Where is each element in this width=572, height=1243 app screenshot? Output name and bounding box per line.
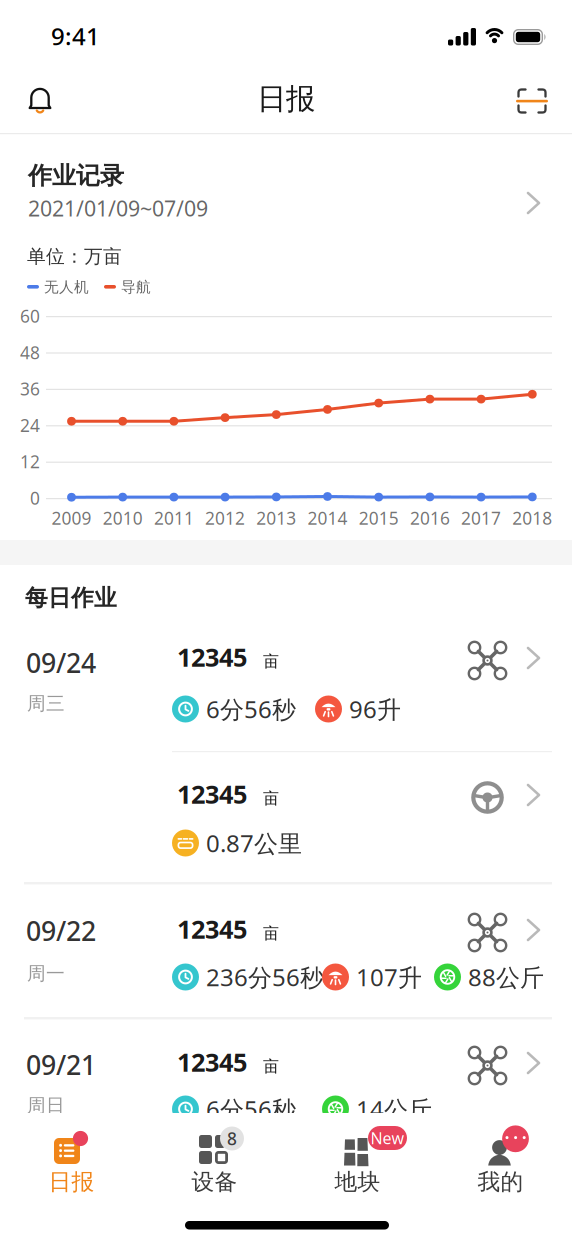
button[interactable]: 12345 bbox=[0, 1020, 572, 1140]
staticText: 12345 bbox=[177, 1045, 247, 1079]
staticText: 0 bbox=[30, 486, 40, 509]
staticText: 0.87公里 bbox=[206, 827, 302, 859]
staticText: 亩 bbox=[263, 1056, 279, 1076]
staticText: 09/24 bbox=[26, 645, 96, 680]
staticText: 09/22 bbox=[26, 913, 96, 948]
staticText: 周三 bbox=[27, 692, 65, 715]
staticText: 107升 bbox=[356, 961, 422, 993]
staticText: 亩 bbox=[263, 923, 279, 943]
staticText: 12345 bbox=[177, 777, 247, 811]
staticText: New bbox=[370, 1127, 404, 1149]
staticText: 我的 bbox=[477, 1168, 523, 1196]
staticText: 作业记录 bbox=[28, 161, 124, 190]
staticText: 236分56秒 bbox=[206, 961, 324, 993]
staticText: 09/21 bbox=[26, 1047, 96, 1082]
staticText: 60 bbox=[20, 304, 40, 327]
staticText: 2016 bbox=[410, 506, 450, 529]
staticText: 设备 bbox=[191, 1168, 237, 1196]
staticText: 日报 bbox=[48, 1168, 94, 1196]
staticText: 2018 bbox=[512, 506, 552, 529]
staticText: 14公斤 bbox=[356, 1093, 432, 1125]
staticText: 2010 bbox=[103, 506, 143, 529]
staticText: 88公斤 bbox=[468, 961, 544, 993]
staticText: 2011 bbox=[154, 506, 194, 529]
staticText: 8 bbox=[227, 1127, 237, 1150]
staticText: 日报 bbox=[257, 81, 315, 117]
staticText: 单位：万亩 bbox=[27, 245, 122, 268]
staticText: 2015 bbox=[359, 506, 399, 529]
button[interactable]: 日报 bbox=[0, 1113, 143, 1208]
staticText: 96升 bbox=[349, 693, 401, 725]
staticText: 9:41 bbox=[51, 20, 100, 52]
staticText: 2013 bbox=[256, 506, 296, 529]
staticText: 无人机 bbox=[44, 278, 89, 296]
staticText: 12345 bbox=[177, 912, 247, 946]
staticText: 周日 bbox=[27, 1094, 65, 1117]
staticText: 地块 bbox=[334, 1168, 380, 1196]
staticText: 每日作业 bbox=[25, 584, 117, 612]
staticText: 周一 bbox=[27, 962, 65, 985]
button[interactable]: 扫一扫 bbox=[510, 79, 554, 123]
button[interactable]: 我的 bbox=[429, 1113, 572, 1208]
staticText: 12345 bbox=[177, 640, 247, 674]
button[interactable]: 作业记录 bbox=[0, 137, 572, 233]
staticText: 24 bbox=[20, 414, 40, 437]
staticText: 2012 bbox=[205, 506, 245, 529]
staticText: 导航 bbox=[121, 278, 151, 296]
staticText: 2009 bbox=[51, 506, 91, 529]
staticText: 12 bbox=[20, 450, 40, 473]
staticText: 亩 bbox=[263, 788, 279, 808]
staticText: 亩 bbox=[263, 651, 279, 671]
button[interactable]: 12345 bbox=[0, 620, 572, 752]
button[interactable]: 12345 bbox=[0, 885, 572, 1018]
staticText: 36 bbox=[20, 377, 40, 400]
button[interactable]: New bbox=[286, 1113, 429, 1208]
staticText: 48 bbox=[20, 341, 40, 364]
button[interactable]: 通知 bbox=[18, 79, 62, 123]
staticText: 6分56秒 bbox=[206, 693, 296, 725]
staticText: 6分56秒 bbox=[206, 1093, 296, 1125]
button[interactable]: 8 bbox=[143, 1113, 286, 1208]
staticText: 2021/01/09~07/09 bbox=[28, 194, 208, 222]
staticText: 2017 bbox=[461, 506, 501, 529]
staticText: 2014 bbox=[307, 506, 347, 529]
button[interactable]: 12345 bbox=[0, 752, 572, 882]
